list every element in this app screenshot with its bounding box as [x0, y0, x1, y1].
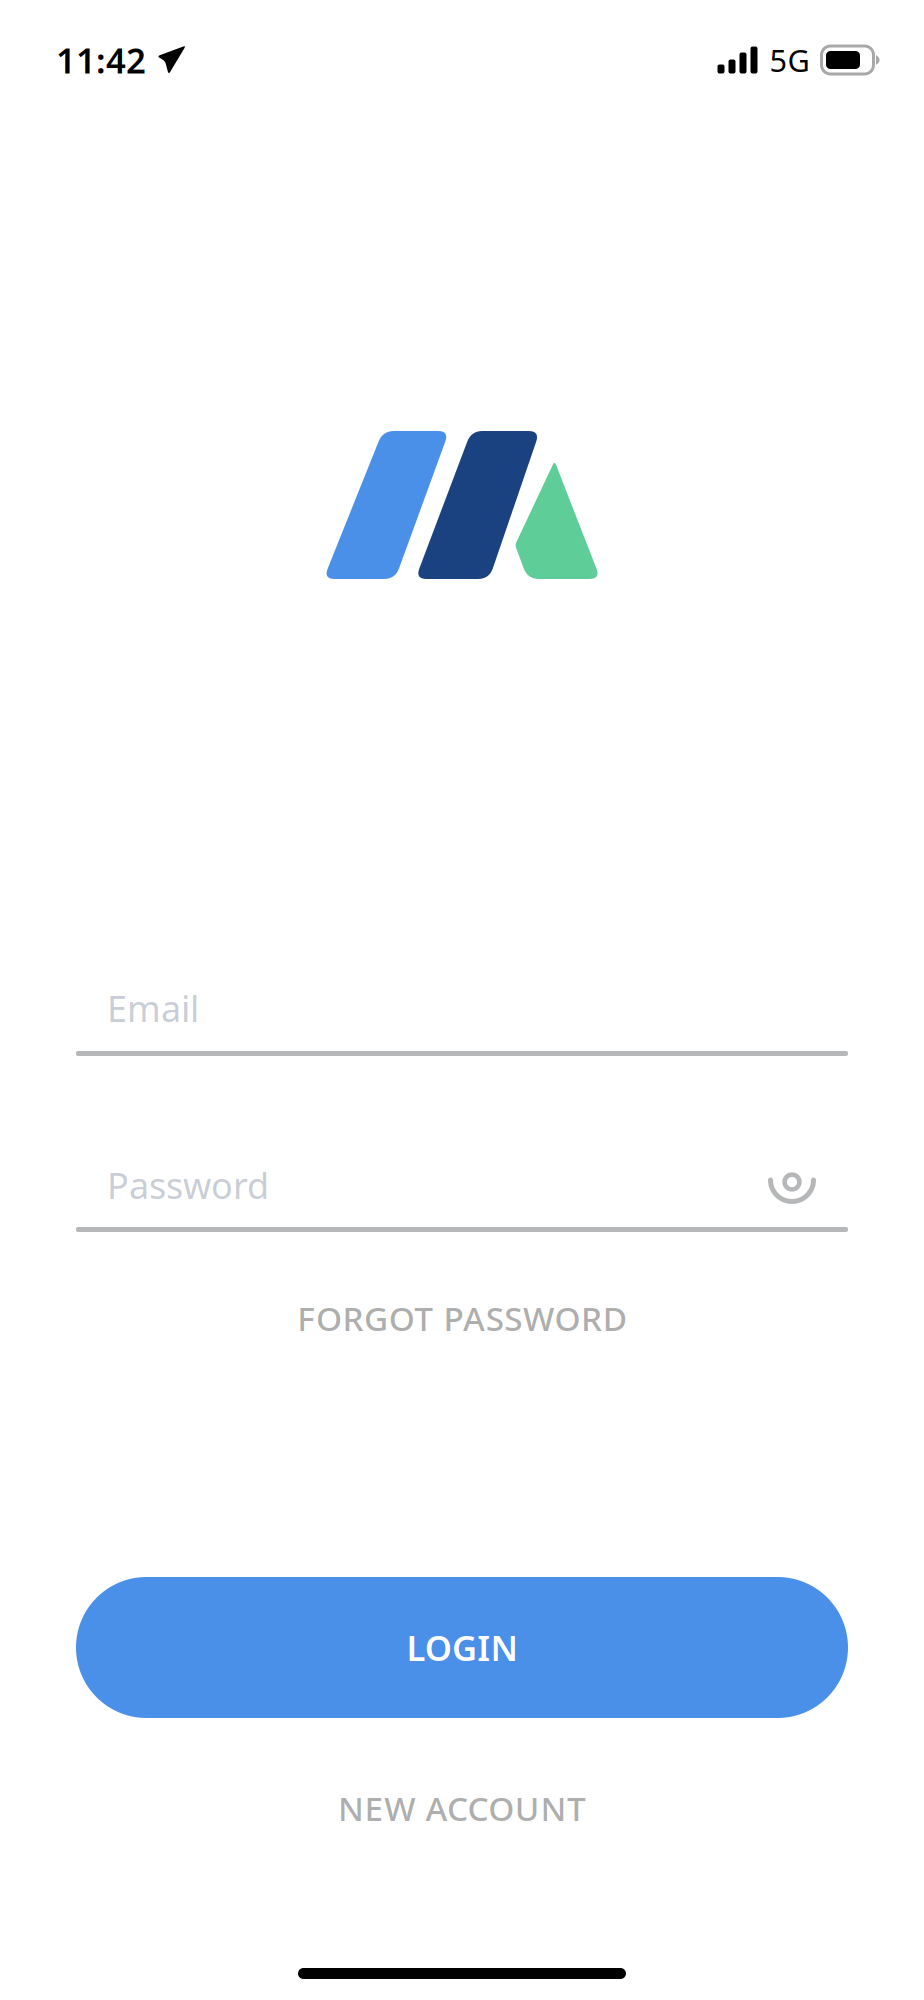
staticText: Password [107, 1161, 269, 1209]
button[interactable]: NEW ACCOUNT [0, 1786, 924, 1830]
button[interactable]: Show password [768, 1159, 816, 1207]
staticText: Email [107, 984, 199, 1032]
staticText: 5G [769, 40, 809, 80]
staticText: NEW ACCOUNT [338, 1786, 586, 1830]
staticText: LOGIN [406, 1624, 518, 1670]
staticText: 11:42 [56, 37, 146, 83]
button[interactable]: LOGIN [76, 1577, 848, 1718]
staticText: FORGOT PASSWORD [297, 1296, 627, 1340]
button[interactable]: FORGOT PASSWORD [0, 1296, 924, 1340]
